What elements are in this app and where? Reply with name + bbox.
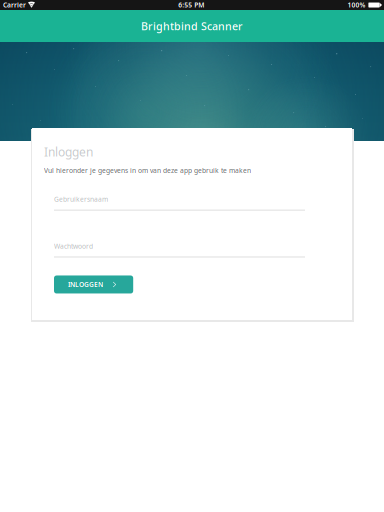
staticText: Carrier [3,1,26,9]
staticText: 6:55 PM [178,1,204,9]
staticText: Brightbind Scanner [141,19,243,33]
staticText: Wachtwoord [54,242,93,250]
button[interactable]: Gebruikersnaam [54,195,305,211]
staticText: Inloggen [44,144,93,160]
button[interactable]: Wachtwoord [54,242,305,257]
staticText: Gebruikersnaam [54,195,108,204]
staticText: 100% [347,1,365,9]
button[interactable]: INLOGGEN [54,275,133,293]
staticText: INLOGGEN [68,280,103,289]
staticText: Vul hieronder je gegevens in om van deze… [44,166,251,175]
